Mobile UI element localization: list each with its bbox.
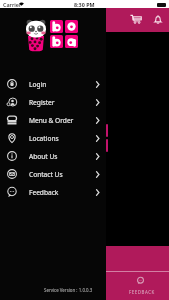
button[interactable]: FEEDBACK [106,246,169,300]
staticText: Contact Us [29,170,63,179]
button[interactable]: Login [0,75,106,93]
staticText: About Us [29,152,58,161]
button[interactable]: About Us [0,147,106,165]
staticText: Menu & Order [29,116,74,125]
staticText: Feedback [29,188,59,197]
button[interactable]: Cart [129,12,143,26]
button[interactable]: Notifications [151,12,165,26]
staticText: Locations [29,134,59,143]
staticText: FEEDBACK [129,289,155,295]
button[interactable]: Feedback [0,183,106,201]
staticText: Service Version : 1.0.0.3 [44,287,93,293]
staticText: Login [29,80,47,89]
staticText: 8:30 PM [74,1,95,8]
button[interactable]: Contact Us [0,165,106,183]
button[interactable]: Register [0,93,106,111]
staticText: Carrier [3,1,22,8]
button[interactable]: Menu & Order [0,111,106,129]
staticText: Register [29,98,55,107]
button[interactable]: Locations [0,129,106,147]
